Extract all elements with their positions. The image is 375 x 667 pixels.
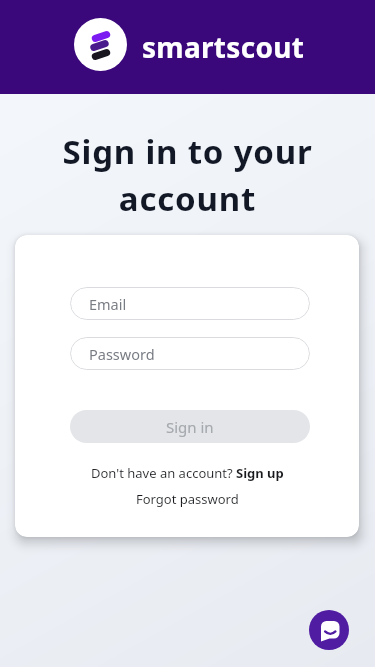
staticText: smartscout — [142, 28, 305, 66]
button[interactable] — [309, 610, 349, 650]
button[interactable]: Don't have an account? Sign up — [91, 464, 284, 482]
staticText: Email — [89, 294, 127, 314]
button[interactable]: Forgot password — [136, 490, 239, 508]
button[interactable]: Sign in — [70, 410, 310, 443]
staticText: Sign in — [166, 417, 214, 437]
button[interactable]: Password — [70, 337, 310, 370]
staticText: Password — [89, 344, 155, 364]
staticText: Sign in to your account — [0, 129, 375, 221]
button[interactable]: Email — [70, 287, 310, 320]
